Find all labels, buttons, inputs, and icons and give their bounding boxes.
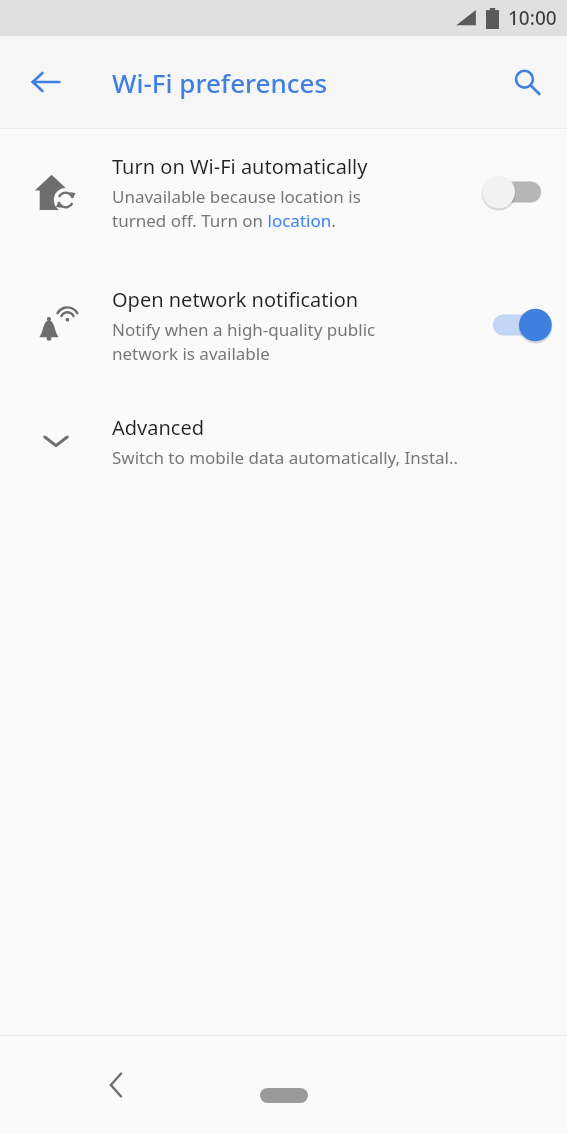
button[interactable]: Toggle on xyxy=(467,255,567,395)
button[interactable]: Back xyxy=(18,54,74,110)
staticText: Wi-Fi preferences xyxy=(112,65,328,100)
staticText: 10:00 xyxy=(508,5,557,31)
staticText: Unavailable because location is turned o… xyxy=(112,185,361,232)
button[interactable]: Home xyxy=(234,1075,334,1115)
staticText: Turn on Wi-Fi automatically xyxy=(112,153,368,180)
button[interactable]: Advanced xyxy=(0,395,567,487)
button[interactable]: Back xyxy=(88,1057,144,1113)
staticText: Notify when a high-quality public networ… xyxy=(112,318,376,365)
staticText: Switch to mobile data automatically, Ins… xyxy=(112,446,459,469)
staticText: Open network notification xyxy=(112,286,359,313)
button[interactable]: Toggle off xyxy=(467,129,567,255)
button[interactable]: Turn on Wi-Fi automatically xyxy=(0,129,567,255)
button[interactable]: Search xyxy=(499,54,555,110)
staticText: Advanced xyxy=(112,414,204,441)
button[interactable]: Open network notification xyxy=(0,255,567,395)
